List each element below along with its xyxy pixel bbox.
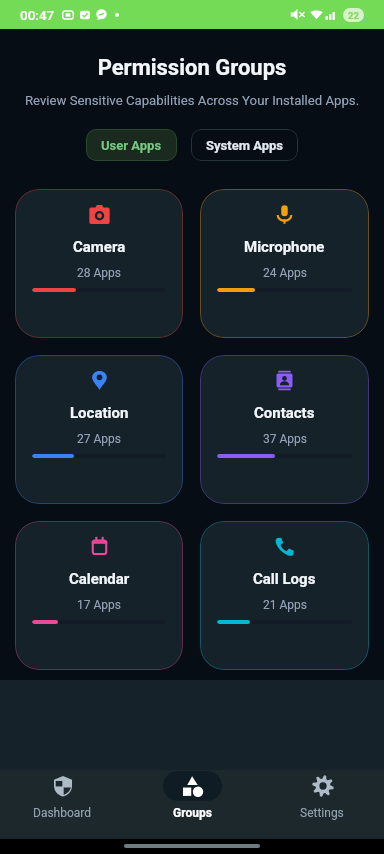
staticText: 28 Apps (77, 266, 121, 280)
staticText: Call Logs (253, 570, 316, 588)
staticText: 27 Apps (77, 432, 121, 446)
staticText: 24 Apps (263, 266, 307, 280)
button[interactable]: Dashboard (2, 770, 122, 820)
staticText: Location (70, 404, 129, 422)
staticText: 37 Apps (263, 432, 307, 446)
staticText: Dashboard (33, 806, 92, 820)
staticText: Settings (300, 806, 344, 820)
staticText: Contacts (254, 404, 315, 422)
button[interactable]: Calendar (15, 521, 183, 670)
staticText: Camera (73, 238, 126, 256)
button[interactable]: Microphone (200, 189, 369, 338)
button[interactable]: System Apps (191, 129, 298, 161)
staticText: Permission Groups (0, 55, 384, 81)
button[interactable]: Call Logs (200, 521, 369, 670)
button[interactable]: Groups (132, 770, 252, 820)
button[interactable]: User Apps (86, 129, 177, 161)
staticText: Calendar (69, 570, 130, 588)
button[interactable]: Camera (15, 189, 183, 338)
button[interactable]: Location (15, 355, 183, 504)
staticText: 21 Apps (263, 598, 307, 612)
staticText: Groups (173, 806, 212, 820)
staticText: Review Sensitive Capabilities Across You… (0, 93, 384, 108)
staticText: 00:47 (20, 7, 55, 23)
staticText: User Apps (101, 138, 162, 153)
staticText: Microphone (244, 238, 325, 256)
button[interactable]: Settings (262, 770, 382, 820)
button[interactable]: Contacts (200, 355, 369, 504)
staticText: 17 Apps (77, 598, 121, 612)
staticText: 22 (348, 10, 359, 21)
staticText: System Apps (206, 138, 283, 153)
